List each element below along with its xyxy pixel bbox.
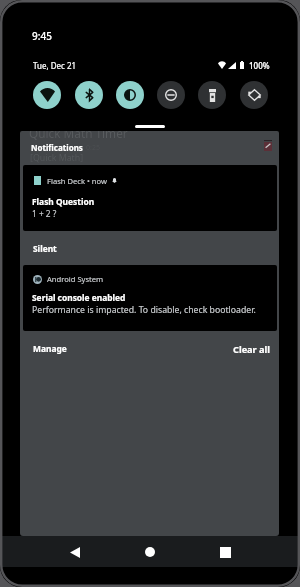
button[interactable]: Do Not Disturb bbox=[157, 81, 185, 109]
button[interactable]: Android System bbox=[23, 265, 277, 331]
staticText: Silent bbox=[33, 243, 57, 254]
staticText: Performance is impacted. To disable, che… bbox=[32, 304, 256, 316]
button[interactable]: Dark theme bbox=[116, 81, 144, 109]
staticText: Flash Deck • now bbox=[47, 176, 107, 186]
button[interactable]: Wi-Fi bbox=[33, 81, 61, 109]
staticText: Tue, Dec 21 bbox=[33, 60, 77, 71]
staticText: Quick Math Timer bbox=[29, 131, 128, 141]
button[interactable]: Bluetooth bbox=[75, 81, 103, 109]
button[interactable]: Clear all bbox=[233, 343, 271, 356]
button[interactable]: Recent apps bbox=[213, 540, 237, 564]
staticText: Flash Question bbox=[32, 196, 95, 207]
staticText: 1 + 2 ? bbox=[32, 208, 57, 219]
button[interactable]: Manage bbox=[33, 343, 67, 354]
button[interactable]: Auto-rotate bbox=[240, 81, 268, 109]
staticText: Android System bbox=[47, 274, 104, 284]
button[interactable]: Notifications bbox=[31, 142, 83, 153]
staticText: [Quick Math] bbox=[30, 152, 84, 164]
button[interactable]: Clear notification bbox=[257, 134, 277, 154]
button[interactable]: Back bbox=[63, 540, 87, 564]
button[interactable]: Flash Deck • now bbox=[23, 165, 277, 231]
staticText: 100% bbox=[249, 60, 270, 71]
staticText: 9:45 bbox=[32, 29, 52, 43]
button[interactable]: Home bbox=[138, 540, 162, 564]
button[interactable]: Flashlight bbox=[198, 81, 226, 109]
staticText: Serial console enabled bbox=[32, 292, 126, 303]
